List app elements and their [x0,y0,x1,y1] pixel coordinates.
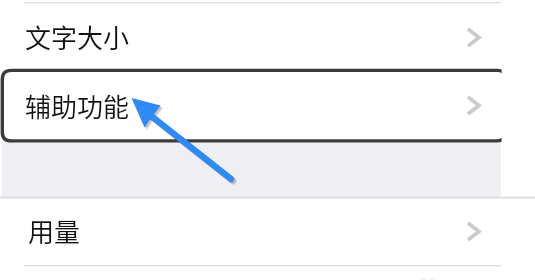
button[interactable]: 辅助功能 [0,70,501,141]
button[interactable]: 用量 [0,198,501,264]
staticText: 辅助功能 [25,87,130,125]
staticText: 文字大小 [25,18,130,56]
other: Pointer [0,0,535,280]
staticText: 用量 [28,212,81,250]
button[interactable]: 文字大小 [0,4,501,70]
